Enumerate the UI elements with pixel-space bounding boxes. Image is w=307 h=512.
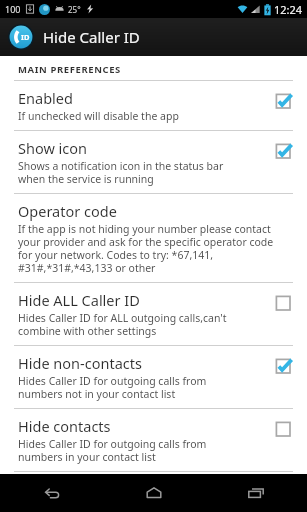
- staticText: If the app is not hiding your number ple…: [18, 222, 274, 275]
- button[interactable]: Checked: [273, 141, 295, 163]
- staticText: Hide contacts: [18, 416, 111, 436]
- button[interactable]: Checked: [273, 356, 295, 378]
- button[interactable]: Unchecked: [273, 419, 295, 441]
- button[interactable]: ID: [0, 18, 307, 56]
- staticText: Hides Caller ID for ALL outgoing calls,c…: [18, 311, 227, 338]
- button[interactable]: Operator code: [0, 194, 307, 282]
- staticText: If unchecked will disable the app: [18, 109, 179, 123]
- button[interactable]: Hide non-contacts: [0, 346, 307, 408]
- staticText: 12:24: [274, 2, 303, 17]
- button[interactable]: Home: [103, 474, 205, 512]
- staticText: Hide Caller ID: [43, 27, 140, 47]
- button[interactable]: Unchecked: [273, 293, 295, 315]
- staticText: 100: [5, 3, 21, 15]
- button[interactable]: Hide contacts: [0, 409, 307, 471]
- staticText: Hide non-contacts: [18, 353, 142, 373]
- button[interactable]: Checked: [273, 91, 295, 113]
- staticText: ID: [21, 32, 30, 42]
- staticText: Show icon: [18, 138, 88, 158]
- button[interactable]: Show icon: [0, 131, 307, 193]
- staticText: Hides Caller ID for outgoing calls from …: [18, 374, 207, 401]
- button[interactable]: Recent apps: [205, 474, 307, 512]
- staticText: Enabled: [18, 88, 73, 108]
- staticText: Shows a notification icon in the status …: [18, 159, 224, 186]
- button[interactable]: Hide ALL Caller ID: [0, 283, 307, 345]
- button[interactable]: Back: [0, 474, 103, 512]
- staticText: MAIN PREFERENCES: [18, 63, 121, 76]
- staticText: Hides Caller ID for outgoing calls from …: [18, 437, 207, 464]
- staticText: Hide ALL Caller ID: [18, 290, 140, 310]
- staticText: Operator code: [18, 201, 117, 221]
- button[interactable]: Enabled: [0, 81, 307, 130]
- staticText: 25°: [68, 4, 81, 15]
